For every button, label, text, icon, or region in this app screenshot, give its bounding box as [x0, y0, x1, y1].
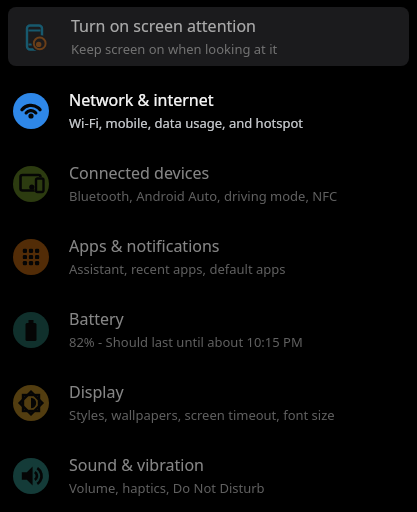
staticText: Turn on screen attention — [71, 15, 257, 37]
button[interactable]: Turn on screen attention — [8, 7, 409, 66]
staticText: Wi-Fi, mobile, data usage, and hotspot — [69, 114, 303, 132]
button[interactable]: Apps & notifications — [0, 220, 417, 293]
staticText: Connected devices — [69, 162, 210, 184]
button[interactable]: Connected devices — [0, 147, 417, 220]
staticText: Display — [69, 381, 124, 403]
staticText: 82% - Should last until about 10:15 PM — [69, 333, 303, 351]
button[interactable]: Display — [0, 366, 417, 439]
button[interactable]: Battery — [0, 293, 417, 366]
staticText: Network & internet — [69, 89, 214, 111]
staticText: Sound & vibration — [69, 454, 204, 476]
button[interactable]: Network & internet — [0, 74, 417, 147]
staticText: Volume, haptics, Do Not Disturb — [69, 479, 265, 497]
button[interactable]: Sound & vibration — [0, 439, 417, 512]
staticText: Assistant, recent apps, default apps — [69, 260, 286, 278]
staticText: Keep screen on when looking at it — [71, 40, 278, 58]
staticText: Bluetooth, Android Auto, driving mode, N… — [69, 187, 338, 205]
staticText: Battery — [69, 308, 124, 330]
staticText: Apps & notifications — [69, 235, 220, 257]
staticText: Styles, wallpapers, screen timeout, font… — [69, 406, 335, 424]
